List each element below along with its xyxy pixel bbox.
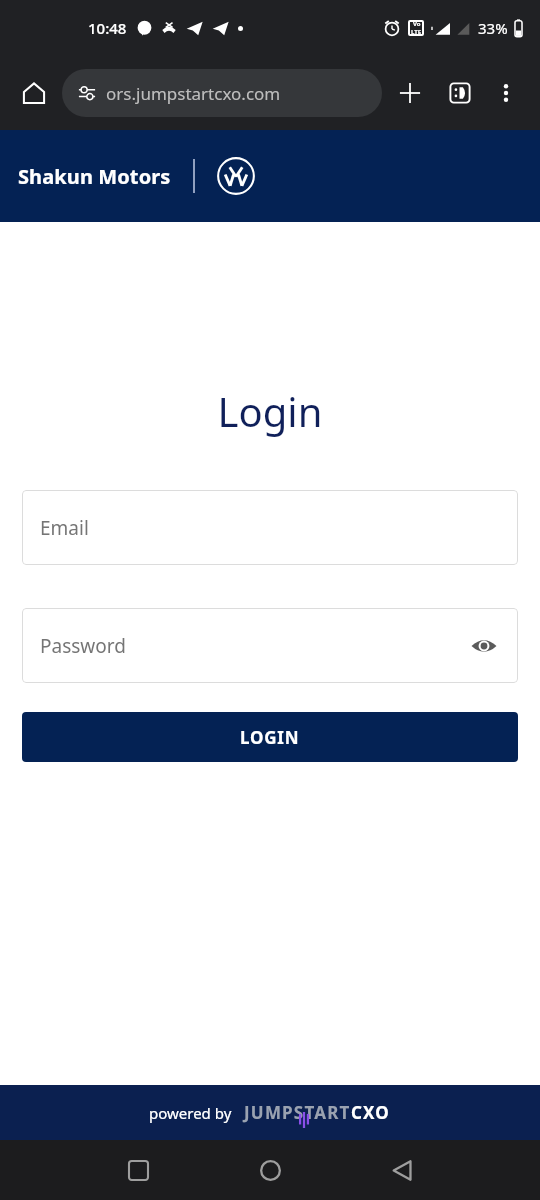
button[interactable]: Home (246, 1146, 294, 1194)
button[interactable]: More options (486, 73, 526, 113)
staticText: Login (0, 384, 540, 438)
button[interactable]: Email (22, 490, 518, 565)
staticText: Vo (413, 20, 421, 28)
staticText: Shakun Motors (18, 163, 171, 190)
button[interactable]: LOGIN (22, 712, 518, 762)
staticText: 33% (478, 18, 508, 38)
staticText: CXO (351, 1101, 391, 1124)
button[interactable]: New tab (388, 71, 432, 115)
staticText: JUMPSTART (244, 1101, 351, 1124)
button[interactable]: ors.jumpstartcxo.com (62, 69, 382, 117)
staticText: LOGIN (240, 726, 300, 749)
staticText: Password (40, 633, 126, 659)
button[interactable]: Home (14, 73, 54, 113)
button[interactable]: Password (22, 608, 518, 683)
staticText: 10:48 (88, 18, 127, 38)
button[interactable]: Tabs (438, 71, 482, 115)
other: Volkswagen logo (217, 157, 255, 195)
button[interactable]: Show password (464, 626, 504, 666)
button[interactable]: Recent apps (114, 1146, 162, 1194)
staticText: Email (40, 515, 89, 541)
button[interactable]: Back (378, 1146, 426, 1194)
staticText: ors.jumpstartcxo.com (106, 82, 281, 105)
staticText: LTE (411, 28, 422, 36)
staticText: powered by (149, 1103, 232, 1123)
